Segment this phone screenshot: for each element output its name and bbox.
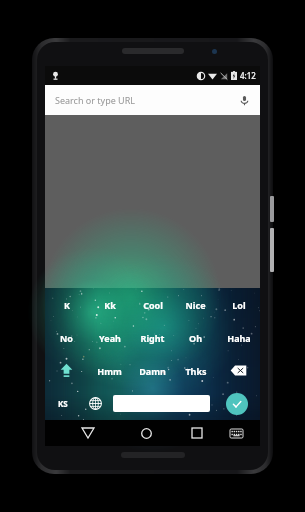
button[interactable]: Damn: [131, 354, 174, 387]
staticText: Oh: [189, 332, 202, 344]
button[interactable]: Home: [117, 420, 175, 446]
button[interactable]: Search or type URL: [45, 85, 260, 115]
staticText: Lol: [232, 299, 246, 311]
staticText: KS: [58, 398, 68, 409]
staticText: 4:12: [240, 70, 256, 81]
button[interactable]: Thks: [174, 354, 217, 387]
button[interactable]: No: [45, 321, 88, 354]
staticText: Kk: [104, 299, 116, 311]
button[interactable]: Space: [113, 395, 210, 412]
staticText: Nice: [185, 299, 206, 311]
staticText: Search or type URL: [55, 94, 136, 106]
button[interactable]: KS: [45, 387, 81, 420]
staticText: Hmm: [97, 365, 122, 377]
button[interactable]: Cool: [131, 288, 174, 321]
button[interactable]: Recent apps: [175, 420, 219, 446]
button[interactable]: Shift: [45, 354, 88, 387]
button[interactable]: Lol: [217, 288, 260, 321]
button[interactable]: Oh: [174, 321, 217, 354]
button[interactable]: Kk: [88, 288, 131, 321]
button[interactable]: Haha: [217, 321, 260, 354]
staticText: Cool: [143, 299, 163, 311]
staticText: Thks: [185, 365, 207, 377]
button[interactable]: Right: [131, 321, 174, 354]
button[interactable]: Yeah: [88, 321, 131, 354]
button[interactable]: Nice: [174, 288, 217, 321]
staticText: No: [60, 332, 73, 344]
staticText: Haha: [227, 332, 251, 344]
button[interactable]: Hmm: [88, 354, 131, 387]
staticText: Damn: [139, 365, 166, 377]
button[interactable]: Backspace: [217, 354, 260, 387]
button[interactable]: Voice search: [236, 92, 252, 108]
staticText: Yeah: [99, 332, 121, 344]
staticText: K: [64, 299, 70, 311]
staticText: Right: [140, 332, 165, 344]
button[interactable]: Enter: [226, 393, 248, 415]
button[interactable]: Back: [59, 420, 117, 446]
button[interactable]: Change language: [81, 387, 109, 420]
button[interactable]: Switch keyboard: [219, 420, 253, 446]
button[interactable]: K: [45, 288, 88, 321]
